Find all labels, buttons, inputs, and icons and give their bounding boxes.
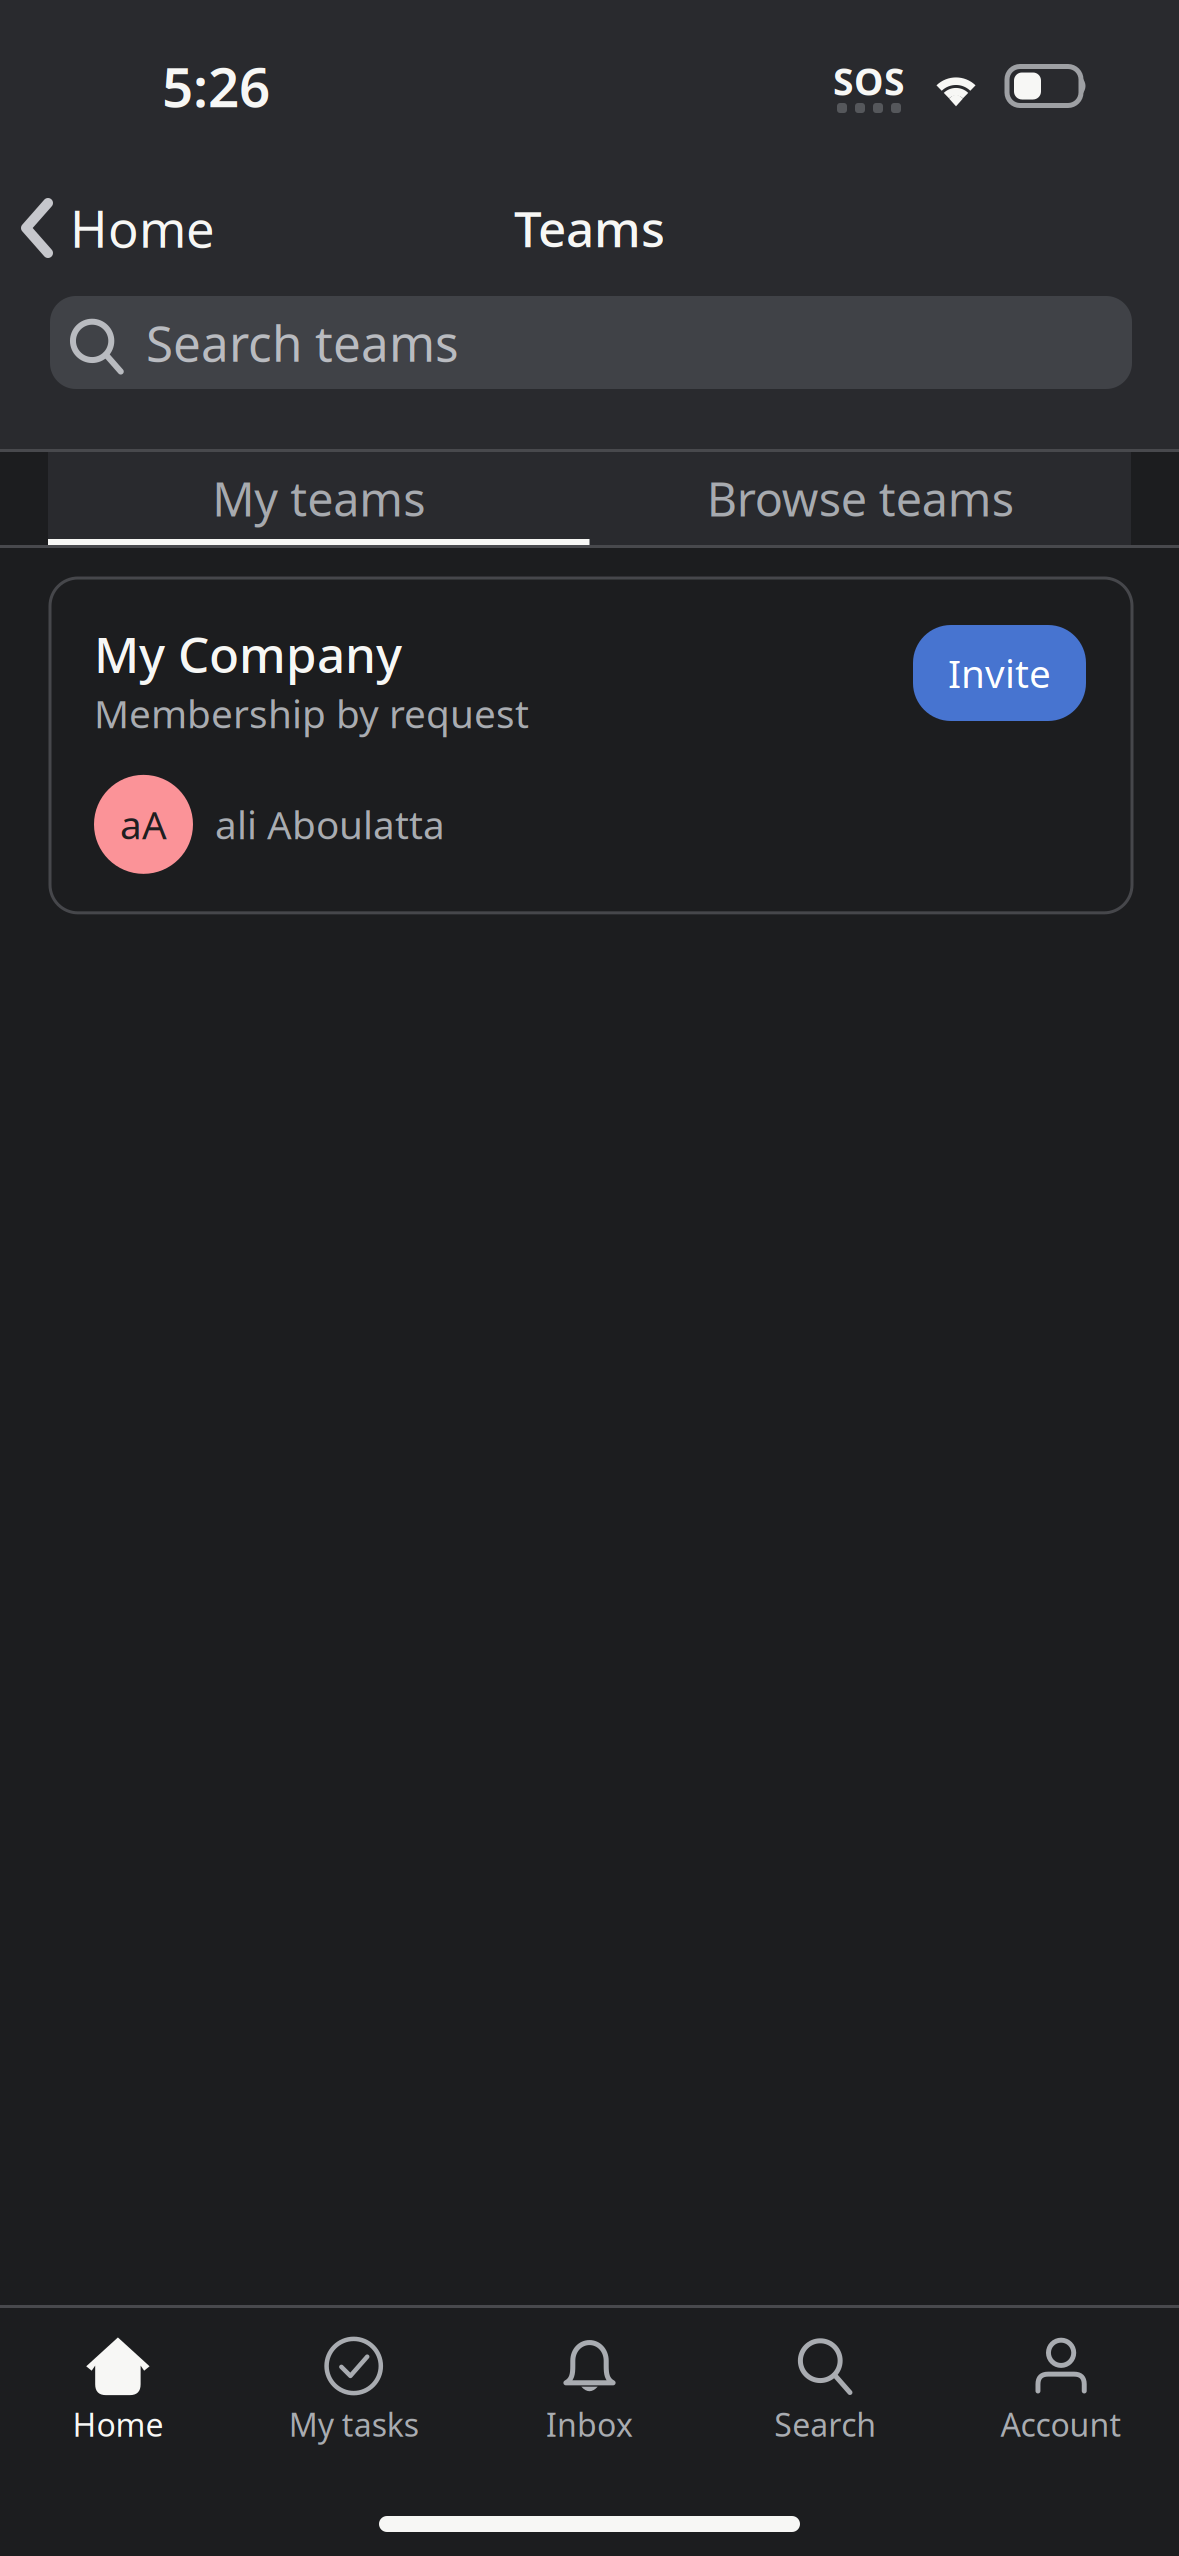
staticText: Invite <box>948 647 1051 699</box>
staticText: ali Aboulatta <box>215 799 445 850</box>
button[interactable]: My Company <box>50 578 1132 913</box>
button[interactable]: Home <box>0 2335 236 2475</box>
staticText: SOS <box>833 56 905 106</box>
button[interactable]: My tasks <box>236 2335 472 2475</box>
button[interactable]: Home <box>0 172 241 284</box>
staticText: Account <box>1001 2403 1122 2445</box>
staticText: My tasks <box>289 2403 419 2445</box>
staticText: Membership by request <box>94 687 529 739</box>
staticText: Search teams <box>146 310 459 375</box>
button[interactable]: Browse teams <box>589 452 1131 545</box>
staticText: My Company <box>94 621 402 686</box>
staticText: Inbox <box>546 2403 633 2445</box>
button[interactable]: My teams <box>48 452 589 545</box>
button[interactable]: Invite <box>913 625 1086 721</box>
button[interactable]: Search <box>707 2335 943 2475</box>
staticText: Search <box>774 2403 876 2445</box>
staticText: Browse teams <box>707 467 1014 529</box>
button[interactable]: Account <box>943 2335 1179 2475</box>
staticText: Home <box>72 2403 163 2445</box>
button[interactable]: Search teams <box>50 296 1132 389</box>
staticText: My teams <box>212 467 425 529</box>
staticText: Home <box>70 194 215 262</box>
staticText: 5:26 <box>162 50 270 122</box>
staticText: Teams <box>514 195 665 261</box>
button[interactable]: Inbox <box>472 2335 707 2475</box>
staticText: aA <box>120 799 167 850</box>
